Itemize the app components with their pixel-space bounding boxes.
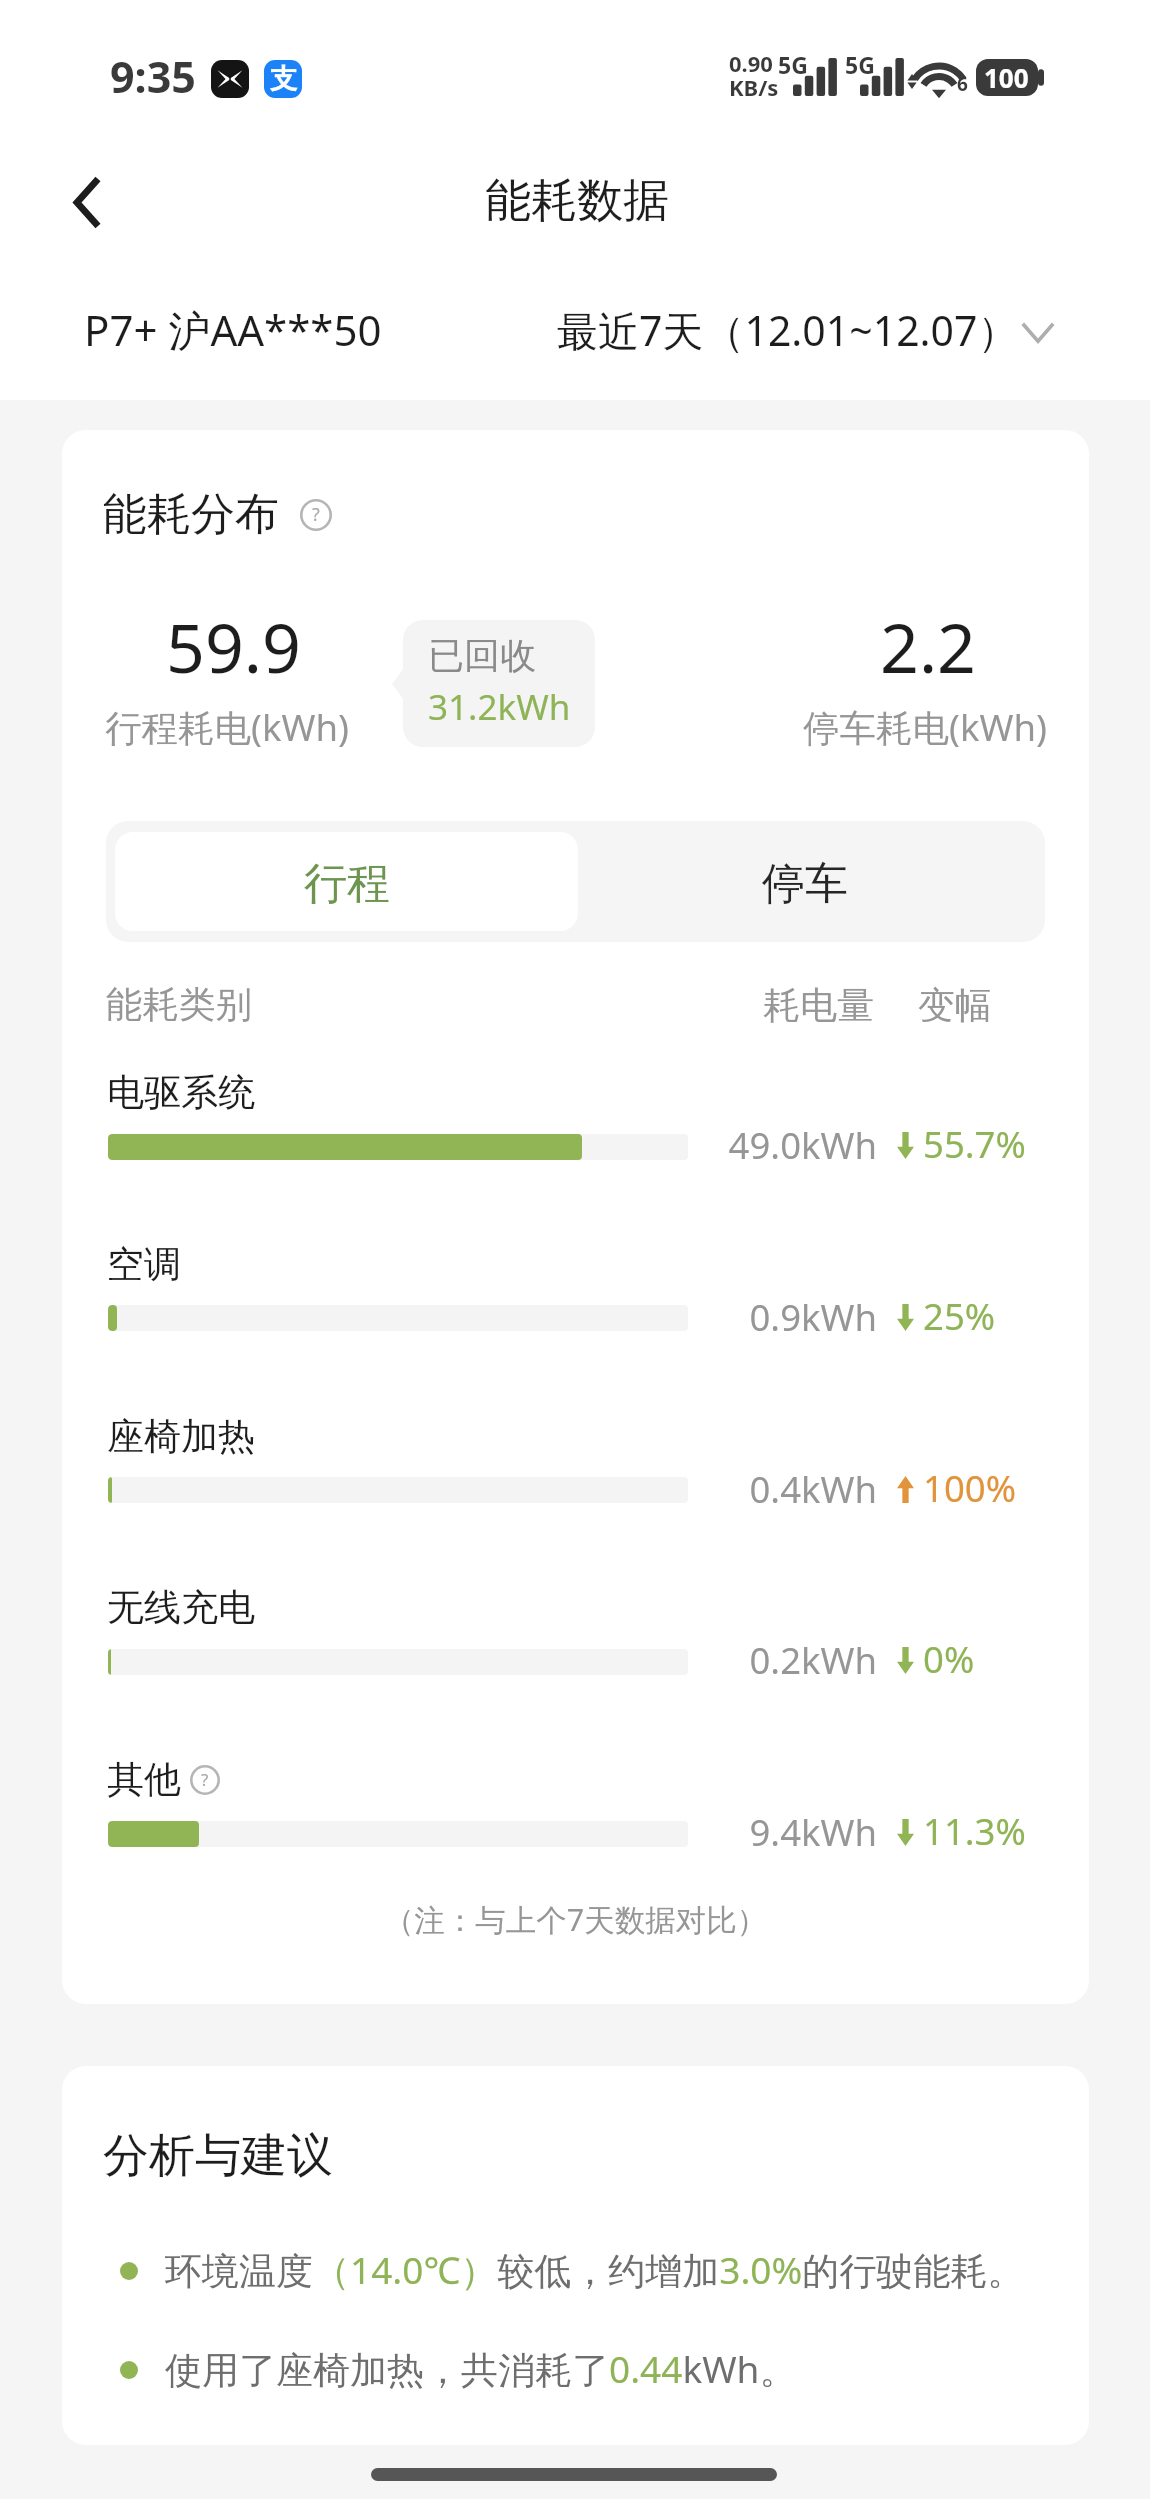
staticText: 耗电量 bbox=[763, 982, 874, 1029]
staticText: 25% bbox=[923, 1291, 996, 1341]
button[interactable]: P7+ 沪AA***50 bbox=[60, 288, 405, 362]
staticText: 0.2kWh bbox=[596, 1635, 877, 1685]
staticText: （注：与上个7天数据对比） bbox=[62, 1898, 1089, 1940]
staticText: 0.9kWh bbox=[596, 1292, 877, 1342]
staticText: 变幅 bbox=[918, 982, 992, 1029]
staticText: ? bbox=[201, 1768, 209, 1791]
staticText: 最近7天（12.01~12.07） bbox=[557, 302, 1019, 358]
staticText: P7+ 沪AA***50 bbox=[84, 301, 382, 358]
button[interactable]: 停车 bbox=[578, 832, 1036, 931]
staticText: 已回收 bbox=[428, 633, 536, 678]
staticText: 9:35 bbox=[110, 47, 196, 106]
staticText: 31.2kWh bbox=[428, 683, 571, 731]
staticText: 0% bbox=[923, 1634, 975, 1684]
staticText: 分析与建议 bbox=[103, 2127, 333, 2185]
staticText: 49.0kWh bbox=[596, 1120, 877, 1170]
staticText: 无线充电 bbox=[107, 1584, 255, 1631]
button[interactable]: Help bbox=[190, 1765, 220, 1795]
staticText: 其他 bbox=[107, 1756, 181, 1803]
staticText: 停车耗电(kWh) bbox=[803, 702, 1047, 752]
staticText: KB/s bbox=[729, 72, 779, 102]
staticText: 100 bbox=[984, 60, 1029, 95]
staticText: 支 bbox=[270, 62, 297, 96]
staticText: 空调 bbox=[107, 1241, 181, 1288]
staticText: 9.4kWh bbox=[596, 1807, 877, 1857]
staticText: 2.2 bbox=[880, 600, 977, 693]
staticText: 100% bbox=[923, 1463, 1016, 1513]
staticText: 行程 bbox=[304, 857, 390, 911]
staticText: 座椅加热 bbox=[107, 1413, 255, 1460]
staticText: 使用了座椅加热，共消耗了0.44kWh。 bbox=[165, 2343, 797, 2394]
staticText: 环境温度（14.0℃）较低，约增加3.0%的行驶能耗。 bbox=[165, 2244, 1025, 2295]
staticText: 5G bbox=[778, 49, 808, 80]
staticText: 行程耗电(kWh) bbox=[105, 702, 349, 752]
staticText: 能耗分布 bbox=[103, 487, 279, 542]
staticText: ? bbox=[312, 502, 320, 526]
staticText: 能耗类别 bbox=[106, 982, 252, 1028]
button[interactable]: Back bbox=[42, 157, 132, 247]
staticText: 电驱系统 bbox=[107, 1069, 255, 1116]
staticText: 5G bbox=[845, 49, 875, 80]
staticText: 0.90 bbox=[729, 48, 773, 78]
staticText: 55.7% bbox=[923, 1119, 1026, 1169]
button[interactable]: Help bbox=[300, 499, 332, 531]
staticText: 能耗数据 bbox=[2, 172, 1150, 230]
staticText: 0.4kWh bbox=[596, 1464, 877, 1514]
staticText: 6 bbox=[957, 71, 968, 97]
staticText: 59.9 bbox=[166, 600, 301, 693]
button[interactable]: 行程 bbox=[115, 832, 578, 931]
staticText: 停车 bbox=[762, 857, 848, 911]
staticText: 11.3% bbox=[923, 1806, 1026, 1856]
button[interactable]: 最近7天（12.01~12.07） bbox=[540, 288, 1070, 362]
